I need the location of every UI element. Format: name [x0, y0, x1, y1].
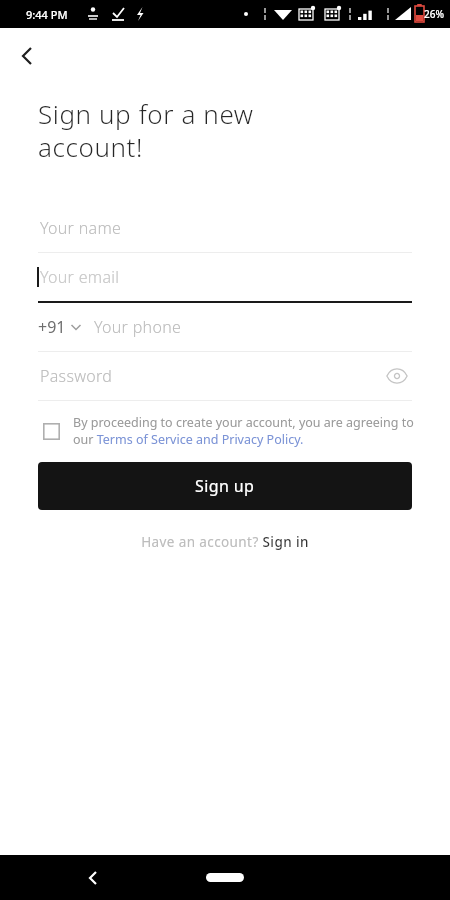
- staticText: Your email: [40, 266, 120, 288]
- button[interactable]: Your name: [0, 204, 450, 253]
- button[interactable]: Back: [6, 34, 50, 78]
- staticText: Sign up for a new account!: [38, 96, 254, 165]
- staticText: Your phone: [94, 316, 182, 338]
- button[interactable]: By proceeding to create your account, yo…: [38, 414, 416, 448]
- staticText: 26%: [424, 7, 444, 21]
- staticText: +91: [38, 316, 66, 338]
- staticText: Your name: [40, 217, 122, 239]
- staticText: Have an account? Sign in: [141, 533, 309, 551]
- staticText: Password: [40, 365, 113, 387]
- staticText: 9:44 PM: [26, 7, 68, 22]
- button[interactable]: Your phone: [94, 316, 412, 338]
- button[interactable]: Your email: [0, 253, 450, 303]
- button[interactable]: Show password: [382, 361, 412, 391]
- staticText: Sign up: [195, 475, 255, 497]
- button[interactable]: +91: [38, 316, 82, 338]
- button[interactable]: Have an account? Sign in: [0, 533, 450, 551]
- button[interactable]: Password: [38, 365, 382, 387]
- button[interactable]: Back: [76, 861, 110, 895]
- staticText: By proceeding to create your account, yo…: [73, 414, 416, 448]
- button[interactable]: Home: [206, 873, 244, 882]
- button[interactable]: Sign up: [38, 462, 412, 510]
